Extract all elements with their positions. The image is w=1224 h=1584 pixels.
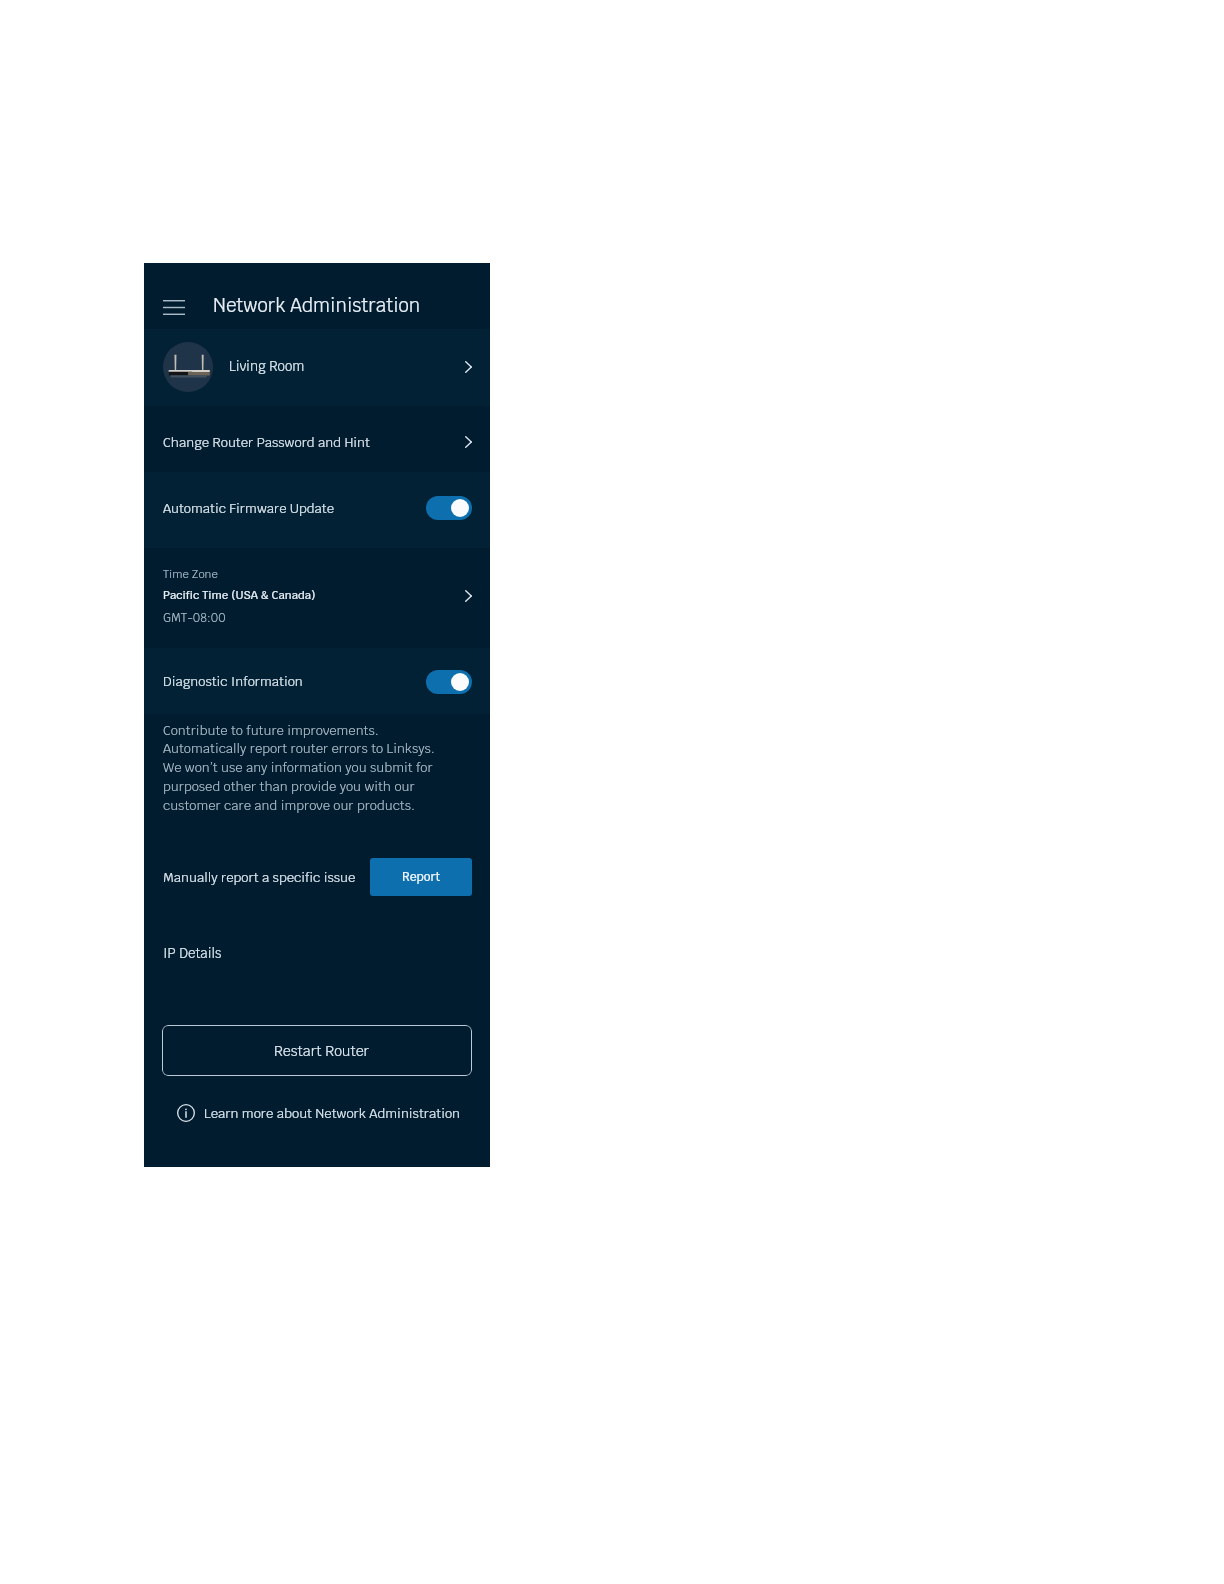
button[interactable]: Restart Router: [162, 1025, 472, 1076]
staticText: Restart Router: [274, 1042, 370, 1060]
staticText: Report: [402, 869, 441, 885]
button[interactable]: Open navigation menu: [155, 288, 193, 326]
staticText: Living Room: [229, 358, 305, 375]
button[interactable]: Diagnostic Information: [144, 646, 490, 717]
staticText: Automatic Firmware Update: [163, 500, 335, 517]
staticText: Contribute to future improvements. Autom…: [163, 722, 435, 814]
button[interactable]: Automatic Firmware Update: [144, 470, 490, 546]
button[interactable]: Diagnostic Information: [426, 670, 472, 694]
staticText: Network Administration: [213, 293, 421, 317]
button[interactable]: Report: [370, 858, 472, 896]
button[interactable]: Learn more about Network Administration: [177, 1099, 465, 1127]
staticText: Manually report a specific issue: [163, 869, 356, 886]
staticText: GMT-08:00: [163, 610, 226, 625]
button[interactable]: Automatic Firmware Update: [426, 496, 472, 520]
staticText: Diagnostic Information: [163, 673, 303, 690]
staticText: Change Router Password and Hint: [163, 434, 370, 451]
button[interactable]: Change Router Password and Hint: [144, 409, 490, 475]
staticText: Time Zone: [163, 567, 218, 582]
button[interactable]: Living Room: [144, 328, 490, 405]
button[interactable]: Time Zone: [144, 541, 490, 651]
staticText: Pacific Time (USA & Canada): [163, 588, 316, 603]
button[interactable]: IP Details: [144, 935, 490, 971]
staticText: IP Details: [163, 945, 222, 962]
staticText: Learn more about Network Administration: [204, 1105, 461, 1122]
